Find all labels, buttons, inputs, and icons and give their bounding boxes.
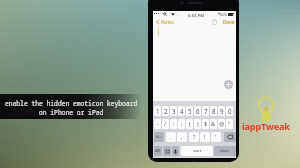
button[interactable]: 2 — [162, 106, 169, 116]
staticText: @ — [219, 120, 225, 128]
button[interactable]: . — [166, 132, 176, 142]
staticText: 2 — [164, 107, 168, 115]
staticText: 82% — [220, 12, 228, 17]
staticText: 7 — [204, 107, 208, 115]
button[interactable]: : — [170, 119, 177, 129]
button[interactable]: ' — [211, 132, 221, 142]
button[interactable]: 6 — [194, 106, 201, 116]
staticText: 6 — [196, 107, 200, 115]
button[interactable]: 8 — [210, 106, 217, 116]
button[interactable]: $ — [202, 119, 209, 129]
button[interactable]: Done — [223, 19, 235, 25]
staticText: ABC — [155, 149, 161, 153]
staticText: ( — [189, 120, 191, 128]
button[interactable]: 7 — [202, 106, 209, 116]
button[interactable]: ? — [189, 132, 199, 142]
button[interactable]: @ — [218, 119, 225, 129]
staticText: 8 — [212, 107, 216, 115]
button[interactable]: 0 — [226, 106, 233, 116]
button[interactable]: Share note — [212, 18, 217, 25]
button[interactable]: return — [214, 146, 236, 156]
staticText: 6:53 PM — [188, 12, 205, 18]
staticText: ! — [204, 133, 206, 141]
button[interactable]: Emoji keyboard — [163, 146, 171, 156]
button[interactable]: Notes — [156, 19, 174, 25]
button[interactable]: Home — [188, 161, 200, 162]
staticText: - — [157, 120, 159, 128]
button[interactable]: ! — [200, 132, 210, 142]
staticText: / — [164, 120, 167, 128]
staticText: ? — [193, 133, 196, 141]
staticText: . — [170, 133, 172, 141]
staticText: ) — [197, 120, 199, 128]
button[interactable]: " — [226, 119, 233, 129]
staticText: 4 — [180, 107, 184, 115]
staticText: return — [220, 149, 230, 153]
staticText: ' — [215, 133, 217, 141]
staticText: 5 — [188, 107, 192, 115]
button[interactable]: 3 — [170, 106, 177, 116]
button[interactable]: space — [181, 146, 213, 156]
staticText: , — [181, 133, 183, 141]
staticText: Done — [223, 19, 235, 25]
button[interactable]: 4 — [178, 106, 185, 116]
button[interactable]: & — [210, 119, 217, 129]
staticText: ··· — [176, 12, 180, 17]
button[interactable]: ) — [194, 119, 201, 129]
staticText: iappTweak — [242, 120, 290, 133]
staticText: Notes — [161, 19, 174, 25]
button[interactable]: 1 — [154, 106, 161, 116]
button[interactable]: Add attachment — [224, 80, 233, 89]
staticText: #+= — [156, 135, 162, 139]
button[interactable]: Backspace — [224, 132, 236, 142]
staticText: 0 — [228, 107, 232, 115]
staticText: " — [228, 120, 231, 128]
staticText: & — [211, 120, 216, 128]
button[interactable]: 9 — [218, 106, 225, 116]
staticText: ; — [181, 120, 183, 128]
button[interactable]: 5 — [186, 106, 193, 116]
staticText: 3 — [172, 107, 176, 115]
button[interactable]: Dictation — [172, 146, 179, 156]
staticText: space — [193, 149, 202, 153]
button[interactable]: / — [162, 119, 169, 129]
staticText: 1 — [156, 107, 160, 115]
staticText: 9 — [220, 107, 224, 115]
button[interactable]: ; — [178, 119, 185, 129]
button[interactable]: ( — [186, 119, 193, 129]
staticText: enable the hidden emoticon keyboard — [5, 99, 138, 108]
staticText: on iPhone or iPad — [39, 108, 104, 117]
staticText: $ — [204, 120, 208, 128]
button[interactable]: , — [177, 132, 187, 142]
button[interactable]: #+= — [154, 132, 164, 142]
button[interactable]: - — [154, 119, 161, 129]
button[interactable]: ABC — [154, 146, 162, 156]
staticText: : — [173, 120, 175, 128]
